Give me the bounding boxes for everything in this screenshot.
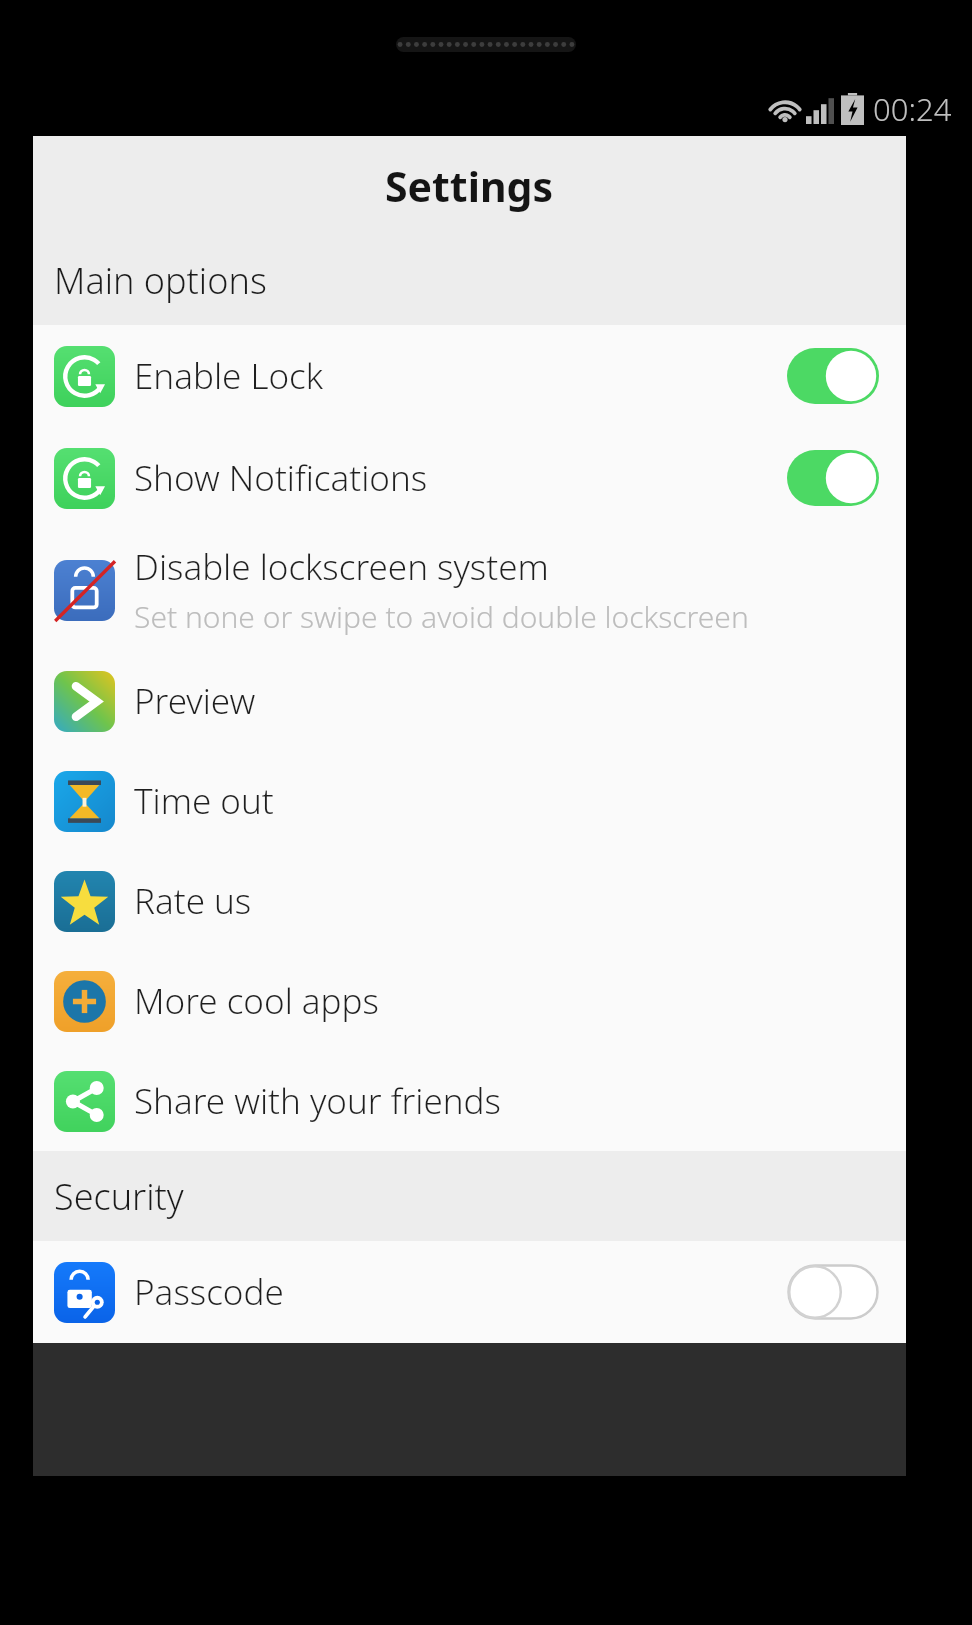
button[interactable]: More cool apps	[33, 951, 906, 1051]
staticText: Disable lockscreen system	[134, 543, 549, 591]
staticText: Security	[54, 1172, 184, 1221]
button[interactable]: Share with your friends	[33, 1051, 906, 1151]
button[interactable]: Show Notifications	[33, 427, 906, 529]
staticText: Set none or swipe to avoid double locksc…	[134, 596, 749, 637]
staticText: More cool apps	[134, 977, 379, 1025]
button[interactable]: Preview	[33, 651, 906, 751]
button[interactable]: Disable lockscreen system	[33, 529, 906, 651]
staticText: Time out	[134, 777, 274, 825]
staticText: Show Notifications	[134, 454, 428, 502]
button[interactable]: Disabled toggle	[787, 1264, 879, 1320]
button[interactable]: Passcode	[33, 1241, 906, 1343]
button[interactable]: Enabled toggle	[787, 348, 879, 404]
staticText: Main options	[54, 256, 267, 305]
staticText: Preview	[134, 677, 256, 725]
staticText: 00:24	[873, 88, 952, 130]
staticText: Rate us	[134, 877, 252, 925]
staticText: Settings	[385, 158, 554, 214]
button[interactable]: Enable Lock	[33, 325, 906, 427]
button[interactable]: Rate us	[33, 851, 906, 951]
staticText: Enable Lock	[134, 352, 324, 400]
button[interactable]: Time out	[33, 751, 906, 851]
button[interactable]: Enabled toggle	[787, 450, 879, 506]
staticText: Passcode	[134, 1268, 284, 1316]
staticText: Share with your friends	[134, 1077, 501, 1125]
